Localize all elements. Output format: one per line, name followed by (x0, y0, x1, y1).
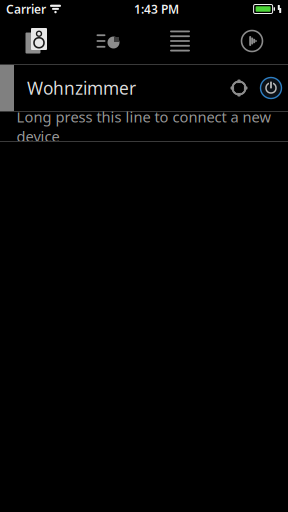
staticText: Carrier (6, 1, 46, 17)
button[interactable]: Settings (224, 65, 254, 111)
button[interactable]: Power (254, 65, 288, 111)
button[interactable]: Wohnzimmer (0, 65, 288, 111)
button[interactable]: Mixer (72, 18, 144, 64)
staticText: 1:43 PM (134, 1, 179, 17)
button[interactable]: Devices (0, 18, 72, 64)
button[interactable]: Play (216, 18, 288, 64)
staticText: Wohnzimmer (27, 76, 136, 99)
staticText: Long press this line to connect a new de… (16, 107, 271, 146)
button[interactable]: Long press this line to connect a new de… (0, 112, 288, 141)
button[interactable]: Playlist (144, 18, 216, 64)
